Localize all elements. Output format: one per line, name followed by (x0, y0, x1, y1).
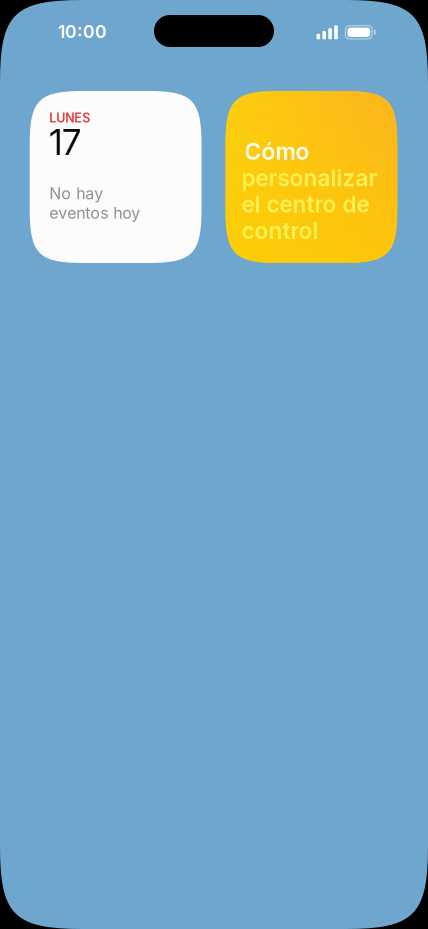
staticText: eventos hoy (49, 203, 140, 223)
staticText: control (241, 217, 318, 244)
button[interactable]: Calendario: lunes 17, no hay eventos hoy (30, 91, 201, 263)
staticText: 17 (49, 121, 81, 163)
staticText: personalizar (241, 164, 377, 192)
staticText: Cómo (244, 138, 309, 165)
staticText: No hay (49, 184, 103, 203)
button[interactable]: Cómo personalizar el centro de control (225, 91, 397, 263)
staticText: LUNES (49, 110, 90, 125)
staticText: el centro de (241, 191, 369, 218)
staticText: 10:00 (58, 21, 107, 42)
